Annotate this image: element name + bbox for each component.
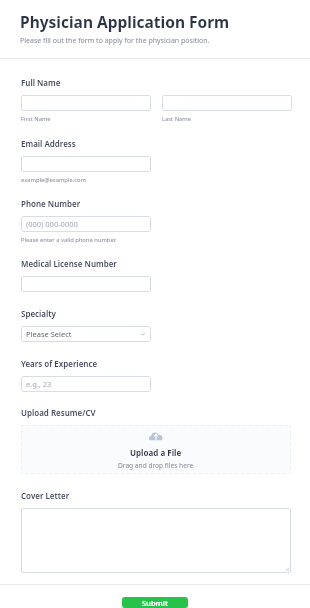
staticText: Drag and drop files here	[118, 461, 194, 470]
staticText: Upload a File	[130, 447, 182, 458]
button[interactable]: Submit	[122, 597, 188, 608]
button[interactable]: Upload a File	[21, 425, 291, 474]
staticText: Years of Experience	[21, 358, 98, 369]
staticText: Last Name	[162, 115, 192, 123]
staticText: Cover Letter	[21, 490, 70, 501]
button[interactable]	[21, 508, 291, 573]
button[interactable]	[21, 95, 151, 111]
button[interactable]	[21, 276, 151, 292]
button[interactable]: Please Select	[21, 326, 151, 342]
staticText: Email Address	[21, 138, 76, 149]
button[interactable]: (000) 000-0000	[21, 216, 151, 232]
staticText: Physician Application Form	[20, 11, 230, 32]
staticText: Upload Resume/CV	[21, 407, 96, 418]
staticText: Specialty	[21, 308, 56, 319]
button[interactable]	[162, 95, 292, 111]
staticText: Please enter a valid phone number.	[21, 236, 117, 244]
staticText: Submit	[142, 598, 168, 608]
staticText: Medical License Number	[21, 258, 117, 269]
staticText: e.g., 23	[26, 379, 52, 389]
staticText: Phone Number	[21, 198, 81, 209]
staticText: (000) 000-0000	[26, 219, 78, 229]
staticText: Full Name	[21, 77, 61, 88]
staticText: Please Select	[26, 329, 72, 339]
button[interactable]	[21, 156, 151, 172]
staticText: Please fill out the form to apply for th…	[20, 36, 210, 46]
staticText: example@example.com	[21, 176, 86, 184]
button[interactable]: e.g., 23	[21, 376, 151, 392]
staticText: First Name	[21, 115, 51, 123]
